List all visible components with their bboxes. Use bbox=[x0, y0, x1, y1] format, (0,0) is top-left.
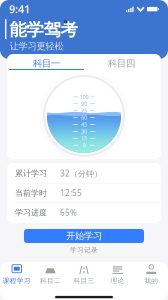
staticText: 让学习更轻松 bbox=[9, 40, 63, 52]
staticText: 65% bbox=[60, 207, 77, 218]
staticText: 当前学时 bbox=[15, 188, 47, 198]
button[interactable]: 理论 bbox=[101, 262, 134, 288]
staticText: 学习记录 bbox=[70, 246, 98, 254]
staticText: 理论 bbox=[111, 277, 125, 285]
staticText: 我的 bbox=[144, 277, 158, 285]
staticText: 开始学习 bbox=[66, 230, 102, 242]
staticText: 100 bbox=[79, 93, 88, 100]
staticText: 60 bbox=[81, 114, 87, 121]
staticText: 能学驾考 bbox=[9, 19, 77, 40]
button[interactable]: 科目一 bbox=[9, 53, 84, 70]
staticText: 科目二 bbox=[40, 277, 61, 285]
staticText: 45 bbox=[81, 121, 87, 128]
button[interactable]: 课程学习 bbox=[0, 262, 34, 288]
staticText: 12:55 bbox=[60, 188, 82, 198]
staticText: 9:41 bbox=[9, 2, 30, 16]
button[interactable]: 开始学习 bbox=[24, 229, 144, 243]
button[interactable]: 科目二 bbox=[34, 262, 67, 288]
staticText: 学习进度 bbox=[15, 208, 47, 217]
staticText: 30 bbox=[81, 128, 87, 135]
button[interactable]: 科目四 bbox=[84, 53, 159, 70]
staticText: 科目一 bbox=[33, 58, 60, 69]
staticText: 课程学习 bbox=[3, 277, 31, 285]
staticText: 90 bbox=[81, 100, 87, 107]
staticText: 累计学习 bbox=[15, 168, 47, 178]
staticText: 15 bbox=[81, 135, 87, 142]
button[interactable]: 学习记录 bbox=[62, 243, 106, 254]
staticText: 32（分钟） bbox=[60, 168, 102, 179]
button[interactable]: 我的 bbox=[134, 262, 168, 288]
staticText: 0 bbox=[82, 142, 85, 149]
staticText: 科目四 bbox=[108, 58, 135, 69]
staticText: 75 bbox=[81, 107, 87, 114]
staticText: 科目三 bbox=[73, 277, 94, 285]
button[interactable]: 科目三 bbox=[67, 262, 101, 288]
